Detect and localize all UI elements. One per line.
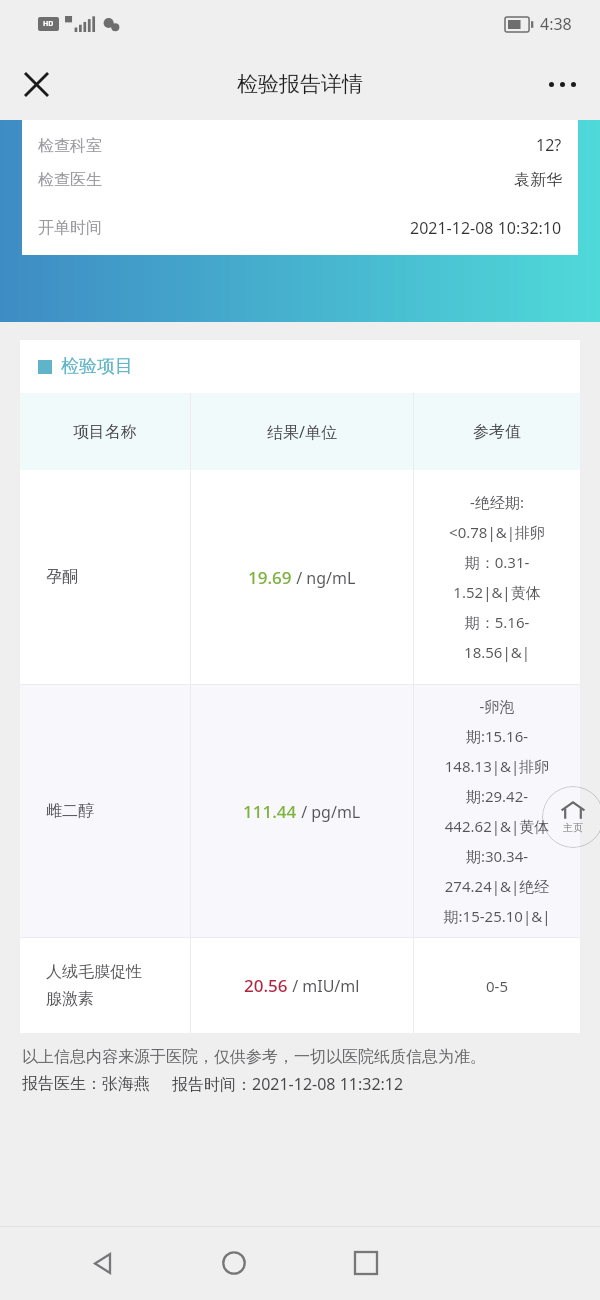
staticText: 雌二醇 [46, 801, 94, 821]
button[interactable]: Close [12, 60, 60, 108]
staticText: -绝经期: <0.78|&|排卵 期：0.31- 1.52|&|黄体 期：5.1… [417, 492, 577, 662]
staticText: / pg/mL [297, 801, 361, 823]
staticText: / mIU/ml [288, 975, 360, 997]
staticText: 19.69 [248, 566, 292, 589]
staticText: 20.56 [244, 974, 288, 997]
button[interactable]: Home shortcut [542, 786, 600, 848]
staticText: 检验项目 [61, 355, 133, 378]
button[interactable]: More options [538, 60, 586, 108]
staticText: 4:38 [540, 13, 572, 35]
staticText: 孕酮 [46, 567, 78, 587]
staticText: 12? [536, 134, 562, 156]
staticText: 111.44 [243, 800, 297, 823]
staticText: 报告时间：2021-12-08 11:32:12 [172, 1073, 404, 1095]
staticText: 人绒毛膜促性 腺激素 [46, 962, 142, 1009]
staticText: 主页 [563, 821, 583, 834]
staticText: 检查科室 [38, 136, 102, 156]
button[interactable]: Home [206, 1235, 262, 1291]
staticText: 项目名称 [73, 422, 137, 442]
staticText: 检验报告详情 [237, 71, 363, 97]
staticText: 2021-12-08 10:32:10 [410, 217, 562, 239]
staticText: 开单时间 [38, 218, 102, 238]
staticText: 袁新华 [514, 170, 562, 190]
button[interactable]: Back [75, 1235, 131, 1291]
staticText: 检查医生 [38, 170, 102, 190]
staticText: 报告医生：张海燕 [22, 1074, 150, 1094]
staticText: 参考值 [473, 422, 521, 442]
button[interactable]: Recent apps [338, 1235, 394, 1291]
staticText: -卵泡 期:15.16- 148.13|&|排卵 期:29.42- 442.62… [417, 696, 577, 926]
staticText: 0-5 [417, 976, 577, 996]
staticText: 以上信息内容来源于医院，仅供参考，一切以医院纸质信息为准。 [22, 1047, 578, 1067]
staticText: HD [43, 19, 54, 29]
staticText: / ng/mL [292, 567, 356, 589]
staticText: 结果/单位 [267, 421, 337, 443]
